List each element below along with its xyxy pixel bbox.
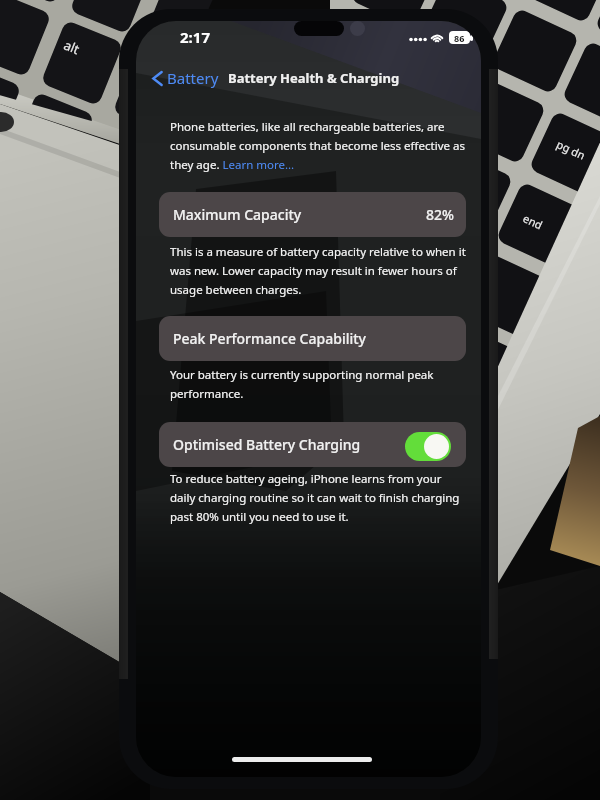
staticText: Maximum Capacity [173,205,302,224]
staticText: To reduce battery ageing, iPhone learns … [170,471,460,524]
staticText: Battery [167,68,219,88]
staticText: Your battery is currently supporting nor… [170,367,434,401]
staticText: Optimised Battery Charging [173,435,361,454]
staticText: pg dn [554,136,588,163]
staticText: end [521,210,545,232]
button[interactable]: Battery [148,63,223,93]
button[interactable]: Optimised Battery Charging toggle [405,432,451,461]
staticText: Battery Health & Charging [228,69,400,87]
staticText: Peak Performance Capability [173,329,366,348]
staticText: 82% [426,205,454,224]
button[interactable]: Peak Performance Capability [159,316,466,361]
staticText: This is a measure of battery capacity re… [170,244,466,297]
button[interactable]: Optimised Battery Charging [159,422,466,467]
staticText: Phone batteries, like all rechargeable b… [170,119,465,172]
staticText: 2:17 [180,27,210,47]
staticText: alt [61,36,83,58]
button[interactable]: Maximum Capacity [159,192,466,237]
staticText: 86 [454,32,465,44]
